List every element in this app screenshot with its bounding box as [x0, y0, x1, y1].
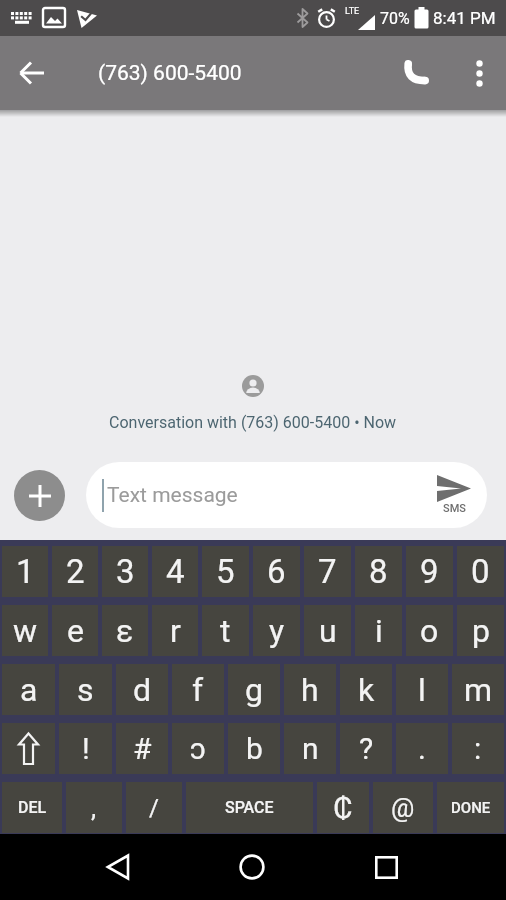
staticText: l — [418, 671, 426, 709]
staticText: h — [301, 671, 319, 709]
button[interactable]: t — [202, 605, 249, 656]
staticText: @ — [391, 793, 415, 823]
button[interactable]: n — [284, 723, 336, 774]
button[interactable]: s — [59, 664, 112, 715]
button[interactable]: 0 — [457, 546, 504, 597]
button[interactable]: d — [116, 664, 168, 715]
staticText: LTE — [345, 6, 360, 17]
button[interactable]: 3 — [102, 546, 148, 597]
button[interactable]: ? — [340, 723, 392, 774]
staticText: g — [245, 671, 263, 709]
button[interactable]: 5 — [202, 546, 249, 597]
staticText: a — [20, 671, 38, 709]
button[interactable]: 1 — [2, 546, 48, 597]
staticText: 9 — [420, 552, 439, 591]
button[interactable]: 8 — [355, 546, 402, 597]
staticText: ɛ — [116, 612, 134, 650]
button[interactable]: i — [355, 605, 402, 656]
button[interactable]: DONE — [437, 782, 504, 833]
staticText: : — [474, 731, 482, 766]
staticText: 1 — [16, 552, 35, 591]
button[interactable] — [207, 834, 297, 900]
staticText: DEL — [18, 798, 47, 817]
button[interactable]: ɛ — [102, 605, 148, 656]
button[interactable] — [452, 36, 506, 110]
button[interactable]: 2 — [52, 546, 98, 597]
button[interactable] — [14, 470, 65, 521]
staticText: o — [420, 612, 439, 650]
staticText: 0 — [471, 552, 490, 591]
button[interactable]: 4 — [152, 546, 198, 597]
button[interactable]: # — [116, 723, 168, 774]
staticText: . — [418, 731, 426, 766]
button[interactable]: ɔ — [172, 723, 224, 774]
button[interactable]: ! — [59, 723, 112, 774]
staticText: i — [375, 612, 383, 650]
staticText: 8:41 PM — [433, 8, 496, 28]
staticText: Text message — [107, 483, 238, 508]
staticText: m — [464, 671, 493, 709]
button[interactable]: p — [457, 605, 504, 656]
staticText: e — [67, 612, 84, 650]
staticText: 70% — [380, 9, 410, 28]
button[interactable]: DEL — [2, 782, 62, 833]
staticText: f — [192, 671, 204, 709]
staticText: p — [472, 612, 490, 650]
button[interactable]: b — [228, 723, 280, 774]
staticText: / — [149, 794, 159, 822]
button[interactable]: @ — [373, 782, 433, 833]
staticText: r — [170, 612, 181, 650]
button[interactable] — [2, 723, 55, 774]
staticText: d — [133, 671, 152, 709]
staticText: ? — [359, 731, 374, 766]
staticText: t — [220, 612, 231, 650]
button[interactable]: e — [52, 605, 98, 656]
button[interactable]: 7 — [304, 546, 351, 597]
button[interactable] — [74, 834, 164, 900]
staticText: SMS — [443, 502, 466, 515]
staticText: ! — [82, 731, 90, 766]
button[interactable] — [388, 36, 444, 110]
staticText: k — [358, 671, 375, 709]
button[interactable]: m — [452, 664, 504, 715]
button[interactable]: h — [284, 664, 336, 715]
staticText: ₵ — [333, 790, 353, 825]
staticText: w — [13, 612, 38, 650]
button[interactable]: : — [452, 723, 504, 774]
staticText: 6 — [267, 552, 286, 591]
staticText: u — [319, 612, 337, 650]
staticText: (763) 600-5400 — [98, 61, 242, 86]
button[interactable]: u — [304, 605, 351, 656]
button[interactable]: SMS — [437, 475, 471, 515]
button[interactable]: Text message — [86, 462, 487, 528]
button[interactable]: / — [126, 782, 182, 833]
button[interactable]: ₵ — [317, 782, 369, 833]
staticText: 8 — [369, 552, 388, 591]
staticText: b — [246, 731, 263, 766]
staticText: y — [269, 612, 285, 650]
button[interactable]: f — [172, 664, 224, 715]
staticText: s — [77, 671, 94, 709]
button[interactable]: l — [396, 664, 448, 715]
staticText: 3 — [116, 552, 135, 591]
button[interactable]: r — [152, 605, 198, 656]
staticText: 2 — [66, 552, 85, 591]
staticText: 7 — [318, 552, 337, 591]
button[interactable] — [341, 834, 431, 900]
button[interactable]: o — [406, 605, 453, 656]
button[interactable]: , — [66, 782, 122, 833]
button[interactable]: y — [253, 605, 300, 656]
button[interactable]: . — [396, 723, 448, 774]
staticText: , — [91, 793, 97, 823]
button[interactable]: SPACE — [186, 782, 313, 833]
button[interactable]: a — [2, 664, 55, 715]
staticText: ɔ — [190, 731, 206, 766]
staticText: SPACE — [225, 798, 274, 817]
button[interactable]: 6 — [253, 546, 300, 597]
button[interactable]: 9 — [406, 546, 453, 597]
button[interactable]: k — [340, 664, 392, 715]
button[interactable] — [0, 36, 64, 110]
staticText: 4 — [166, 552, 185, 591]
button[interactable]: w — [2, 605, 48, 656]
button[interactable]: g — [228, 664, 280, 715]
